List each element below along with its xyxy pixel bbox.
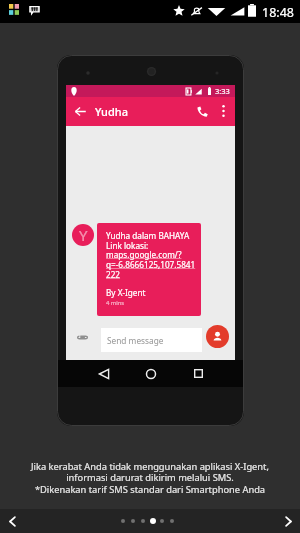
staticText: Send message (107, 335, 164, 346)
staticText: By X-Igent (106, 287, 146, 298)
button[interactable]: Call (191, 100, 214, 123)
button[interactable] (160, 519, 164, 523)
button[interactable] (141, 519, 145, 523)
button[interactable]: More options (213, 100, 234, 121)
button[interactable]: Send message (101, 328, 202, 352)
staticText: 3:33 (215, 86, 230, 96)
button[interactable] (170, 519, 174, 523)
staticText: 4 mins (106, 299, 125, 307)
button[interactable]: Back (69, 100, 92, 123)
button[interactable]: Recent apps (187, 362, 210, 385)
button[interactable]: Send to contact (206, 325, 229, 348)
staticText: 18:48 (262, 4, 294, 21)
button[interactable] (131, 519, 135, 523)
staticText: Yudha (95, 104, 128, 119)
button[interactable]: Home (139, 362, 162, 385)
staticText: Jika kerabat Anda tidak menggunakan apli… (31, 460, 269, 496)
button[interactable]: Attach file (72, 327, 93, 348)
staticText: maps.google.com/? q=-6.8666125,107.5841 … (106, 249, 198, 280)
staticText: Yudha dalam BAHAYA Link lokasi: (106, 230, 194, 251)
button[interactable] (121, 519, 125, 523)
button[interactable]: Previous (0, 509, 24, 533)
button[interactable] (150, 518, 156, 524)
button[interactable]: Next (276, 509, 300, 533)
staticText: Y (79, 225, 88, 245)
button[interactable]: Back (92, 362, 115, 385)
